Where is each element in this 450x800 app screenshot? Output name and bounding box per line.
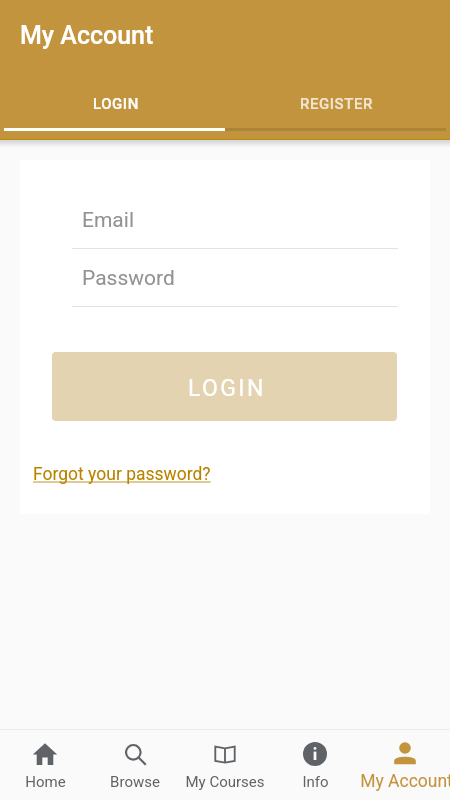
staticText: Info xyxy=(302,773,329,791)
button[interactable]: LOGIN xyxy=(5,80,226,128)
staticText: Home xyxy=(25,773,66,791)
button[interactable]: My Courses xyxy=(180,730,270,800)
staticText: REGISTER xyxy=(300,95,373,113)
staticText: Forgot your password? xyxy=(33,464,211,485)
staticText: My Account xyxy=(20,21,154,50)
staticText: Password xyxy=(82,266,175,291)
staticText: Email xyxy=(82,208,134,233)
button[interactable]: Forgot your password? xyxy=(33,464,211,485)
button[interactable]: LOGIN xyxy=(52,352,397,421)
button[interactable]: REGISTER xyxy=(226,80,447,128)
staticText: LOGIN xyxy=(93,95,139,113)
button[interactable]: Info xyxy=(270,730,360,800)
staticText: My Account xyxy=(360,771,450,792)
staticText: Browse xyxy=(110,773,160,791)
button[interactable]: My Account xyxy=(360,730,450,800)
staticText: My Courses xyxy=(185,773,265,791)
button[interactable]: Browse xyxy=(90,730,180,800)
button[interactable]: Home xyxy=(0,730,90,800)
staticText: LOGIN xyxy=(188,375,266,402)
